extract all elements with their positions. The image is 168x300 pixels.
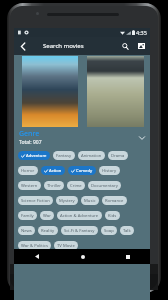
staticText: Romance	[105, 198, 124, 204]
button[interactable]	[87, 56, 144, 140]
staticText: History	[102, 168, 117, 174]
button[interactable]: Soap	[101, 226, 117, 235]
button[interactable]: War & Politics	[18, 241, 51, 250]
button[interactable]: Animation	[78, 151, 105, 160]
button[interactable]: Documentary	[88, 181, 121, 190]
staticText: TV Movie	[57, 243, 75, 249]
button[interactable]: Kids	[105, 211, 120, 220]
button[interactable]: Mystery	[56, 196, 78, 205]
staticText: Genre	[19, 129, 40, 139]
button[interactable]: Horror	[18, 166, 38, 175]
staticText: Soap	[104, 228, 114, 234]
button[interactable]: Back	[15, 38, 31, 54]
staticText: War	[43, 213, 51, 219]
button[interactable]: Music	[81, 196, 99, 205]
button[interactable]: TV Movie	[54, 241, 78, 250]
staticText: Drama	[111, 153, 125, 159]
staticText: Sci-Fi & Fantasy	[64, 228, 95, 234]
button[interactable]: War	[40, 211, 54, 220]
button[interactable]: Reality	[38, 226, 58, 235]
button[interactable]: Crime	[67, 181, 85, 190]
staticText: Animation	[81, 153, 102, 159]
staticText: Music	[84, 198, 96, 204]
staticText: 4:35	[136, 29, 147, 36]
staticText: Family	[21, 213, 34, 219]
staticText: Total: 907	[19, 139, 42, 146]
button[interactable]: Action	[41, 166, 65, 175]
button[interactable]: Recents	[105, 249, 150, 264]
button[interactable]: Sci-Fi & Fantasy	[61, 226, 98, 235]
button[interactable]: Comedy	[68, 166, 96, 175]
staticText: Search movies	[43, 42, 84, 50]
button[interactable]: Grid view	[133, 38, 149, 54]
staticText: Adventure	[26, 153, 47, 159]
staticText: Action	[49, 168, 62, 174]
staticText: News	[21, 228, 32, 234]
button[interactable]: Talk	[120, 226, 134, 235]
button[interactable]: Fantasy	[53, 151, 75, 160]
staticText: Crime	[70, 183, 82, 189]
staticText: War & Politics	[21, 243, 48, 249]
staticText: Documentary	[91, 183, 118, 189]
button[interactable]: Back	[14, 249, 60, 264]
staticText: Science Fiction	[21, 198, 50, 204]
staticText: Action & Adventure	[60, 213, 99, 219]
button[interactable]: News	[18, 226, 35, 235]
staticText: Comedy	[76, 168, 93, 174]
button[interactable]: Romance	[102, 196, 127, 205]
staticText: Mystery	[59, 198, 75, 204]
staticText: Western	[21, 183, 38, 189]
staticText: Talk	[123, 228, 131, 234]
staticText: Thriller	[47, 183, 61, 189]
button[interactable]	[22, 56, 78, 140]
staticText: Reality	[41, 228, 55, 234]
button[interactable]: Drama	[108, 151, 128, 160]
staticText: Fantasy	[56, 153, 72, 159]
button[interactable]: Family	[18, 211, 37, 220]
button[interactable]: Thriller	[44, 181, 64, 190]
staticText: Kids	[108, 213, 117, 219]
button[interactable]: Adventure	[18, 151, 50, 160]
button[interactable]: Science Fiction	[18, 196, 53, 205]
button[interactable]: Action & Adventure	[57, 211, 102, 220]
button[interactable]: Home	[60, 249, 105, 264]
button[interactable]: History	[99, 166, 120, 175]
button[interactable]: Western	[18, 181, 41, 190]
button[interactable]: Collapse genres	[136, 132, 148, 144]
staticText: Horror	[21, 168, 35, 174]
button[interactable]: Search	[117, 38, 133, 54]
